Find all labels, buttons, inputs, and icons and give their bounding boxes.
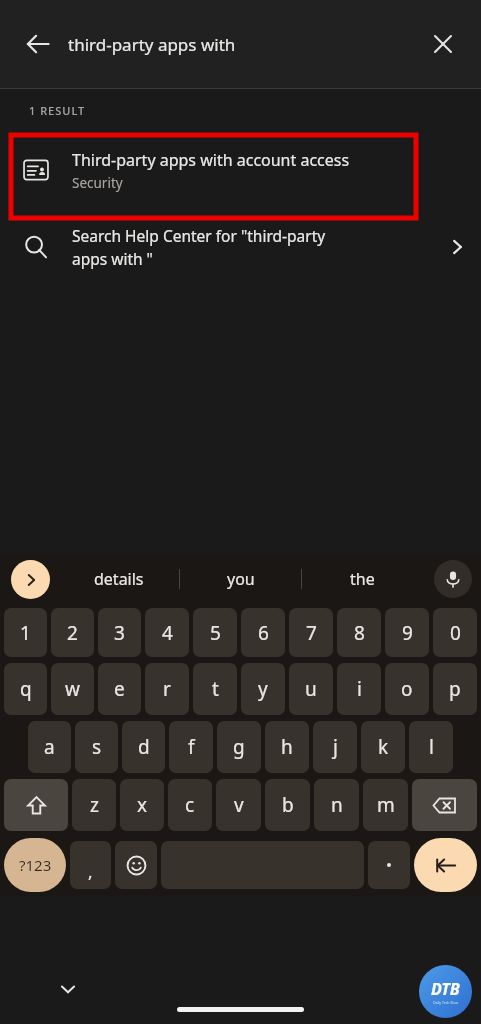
button[interactable]: q: [4, 663, 47, 715]
button[interactable]: details: [58, 553, 179, 605]
button[interactable]: Backspace: [412, 779, 477, 831]
button[interactable]: c: [168, 779, 212, 831]
staticText: c: [185, 792, 195, 818]
staticText: 8: [354, 620, 365, 646]
button[interactable]: y: [241, 663, 285, 715]
staticText: f: [188, 734, 195, 760]
button[interactable]: r: [145, 663, 189, 715]
staticText: q: [20, 676, 32, 702]
staticText: t: [212, 676, 219, 702]
staticText: l: [429, 734, 434, 760]
button[interactable]: i: [337, 663, 381, 715]
staticText: k: [378, 734, 389, 760]
button[interactable]: Shift: [4, 779, 68, 831]
staticText: s: [92, 734, 102, 760]
staticText: u: [305, 676, 317, 702]
button[interactable]: h: [265, 721, 309, 773]
staticText: ?123: [19, 855, 52, 875]
button[interactable]: 6: [241, 608, 285, 657]
button[interactable]: Clear search: [419, 20, 467, 68]
staticText: i: [357, 676, 362, 702]
staticText: h: [281, 734, 293, 760]
staticText: Third-party apps with account access: [72, 149, 350, 171]
button[interactable]: f: [169, 721, 213, 773]
staticText: 3: [114, 620, 125, 646]
staticText: 6: [258, 620, 269, 646]
staticText: 5: [210, 620, 221, 646]
button[interactable]: 3: [98, 608, 141, 657]
button[interactable]: Emoji: [115, 841, 157, 889]
button[interactable]: 1: [4, 608, 47, 657]
staticText: d: [138, 734, 150, 760]
button[interactable]: you: [180, 553, 301, 605]
button[interactable]: Enter: [414, 838, 477, 892]
staticText: j: [333, 734, 338, 760]
button[interactable]: b: [265, 779, 310, 831]
staticText: x: [137, 792, 148, 818]
staticText: n: [331, 792, 343, 818]
staticText: DTB: [431, 978, 460, 1000]
button[interactable]: 4: [145, 608, 189, 657]
staticText: 0: [450, 620, 461, 646]
staticText: third-party apps with: [68, 33, 236, 56]
staticText: apps with ": [72, 248, 153, 269]
button[interactable]: v: [216, 779, 261, 831]
button[interactable]: 7: [289, 608, 333, 657]
button[interactable]: m: [363, 779, 408, 831]
button[interactable]: w: [51, 663, 94, 715]
button[interactable]: More suggestions: [11, 560, 50, 599]
staticText: r: [163, 676, 171, 702]
staticText: b: [282, 792, 294, 818]
staticText: Search Help Center for "third-party: [72, 225, 326, 246]
button[interactable]: d: [122, 721, 165, 773]
button[interactable]: Hide keyboard: [48, 969, 88, 1009]
button[interactable]: 9: [385, 608, 429, 657]
staticText: y: [258, 676, 268, 702]
button[interactable]: s: [75, 721, 118, 773]
staticText: p: [449, 676, 461, 702]
staticText: the: [350, 568, 375, 590]
button[interactable]: z: [72, 779, 116, 831]
staticText: ,: [88, 860, 93, 883]
button[interactable]: Period: [368, 841, 410, 889]
button[interactable]: g: [217, 721, 261, 773]
button[interactable]: 0: [433, 608, 477, 657]
button[interactable]: x: [120, 779, 164, 831]
staticText: 7: [306, 620, 317, 646]
staticText: 1 RESULT: [29, 103, 86, 118]
button[interactable]: o: [385, 663, 429, 715]
staticText: Daily Tech Buzz: [433, 1000, 459, 1005]
staticText: g: [233, 734, 245, 760]
staticText: 9: [402, 620, 413, 646]
staticText: 4: [162, 620, 173, 646]
button[interactable]: 8: [337, 608, 381, 657]
button[interactable]: the: [302, 553, 423, 605]
staticText: w: [65, 676, 80, 702]
button[interactable]: k: [361, 721, 405, 773]
button[interactable]: e: [98, 663, 141, 715]
button[interactable]: 2: [51, 608, 94, 657]
button[interactable]: 5: [193, 608, 237, 657]
staticText: e: [114, 676, 125, 702]
button[interactable]: t: [193, 663, 237, 715]
staticText: details: [94, 568, 144, 590]
button[interactable]: Voice input: [434, 560, 472, 598]
button[interactable]: u: [289, 663, 333, 715]
button[interactable]: Comma: [70, 841, 111, 889]
staticText: 2: [67, 620, 78, 646]
staticText: v: [234, 792, 244, 818]
staticText: you: [227, 568, 255, 590]
button[interactable]: l: [409, 721, 453, 773]
button[interactable]: Search Help Center for "third-party: [0, 208, 481, 286]
button[interactable]: p: [433, 663, 477, 715]
staticText: 1: [20, 620, 31, 646]
staticText: m: [377, 792, 395, 818]
button[interactable]: n: [314, 779, 359, 831]
button[interactable]: Back: [12, 18, 64, 70]
button[interactable]: Third-party apps with account access: [0, 132, 481, 208]
button[interactable]: j: [313, 721, 357, 773]
staticText: a: [44, 734, 55, 760]
button[interactable]: a: [28, 721, 71, 773]
button[interactable]: ?123: [4, 838, 66, 892]
